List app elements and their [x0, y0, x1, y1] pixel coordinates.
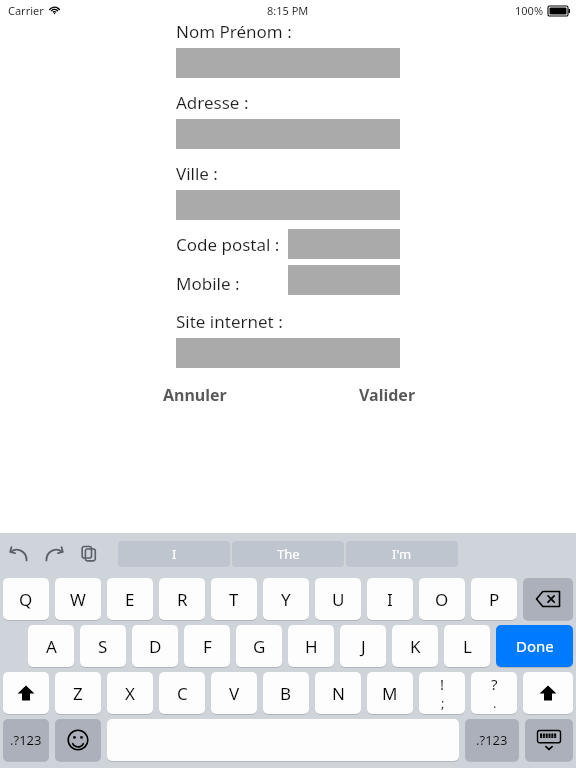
button[interactable]: U — [315, 578, 361, 620]
button[interactable]: Done — [496, 625, 573, 667]
staticText: ? — [491, 674, 498, 694]
staticText: L — [463, 635, 472, 658]
staticText: Carrier — [8, 3, 44, 18]
staticText: Y — [281, 588, 291, 611]
button[interactable]: Backspace — [523, 578, 573, 620]
staticText: G — [253, 635, 266, 658]
button[interactable]: V — [211, 672, 257, 714]
staticText: Ville : — [176, 162, 218, 185]
button[interactable]: Shift — [3, 672, 49, 714]
staticText: Mobile : — [176, 272, 240, 295]
staticText: B — [280, 682, 292, 705]
staticText: Z — [73, 682, 83, 705]
staticText: K — [410, 635, 421, 658]
staticText: F — [203, 635, 212, 658]
button[interactable]: M — [367, 672, 413, 714]
button[interactable]: Valider — [342, 382, 432, 408]
button[interactable]: .?123 — [3, 719, 49, 761]
button[interactable]: The — [232, 541, 344, 567]
button[interactable]: I — [367, 578, 413, 620]
staticText: ; — [441, 694, 445, 712]
staticText: Done — [516, 636, 554, 656]
staticText: V — [229, 682, 240, 705]
staticText: O — [435, 588, 449, 611]
button[interactable]: Z — [55, 672, 101, 714]
button[interactable]: O — [419, 578, 465, 620]
staticText: 100% — [515, 3, 544, 18]
staticText: Site internet : — [176, 310, 283, 333]
staticText: The — [277, 545, 300, 563]
staticText: Code postal : — [176, 233, 280, 256]
button[interactable]: T — [211, 578, 257, 620]
button[interactable]: W — [55, 578, 101, 620]
button[interactable]: D — [132, 625, 178, 667]
button[interactable]: I'm — [346, 541, 458, 567]
staticText: ! — [440, 674, 445, 694]
button[interactable]: A — [28, 625, 74, 667]
button[interactable]: .?123 — [465, 719, 519, 761]
staticText: Annuler — [163, 384, 227, 406]
staticText: Adresse : — [176, 91, 249, 114]
button[interactable]: ! — [419, 672, 465, 714]
staticText: H — [305, 635, 318, 658]
button[interactable]: Hide keyboard — [525, 719, 573, 761]
button[interactable]: K — [392, 625, 438, 667]
button[interactable]: ? — [471, 672, 517, 714]
staticText: .?123 — [10, 731, 42, 749]
staticText: P — [489, 588, 500, 611]
staticText: I — [172, 545, 177, 563]
button[interactable]: I — [118, 541, 230, 567]
button[interactable]: Paste — [74, 539, 104, 569]
staticText: I'm — [392, 545, 412, 563]
button[interactable]: Undo — [4, 539, 34, 569]
button[interactable]: X — [107, 672, 153, 714]
staticText: .?123 — [476, 731, 508, 749]
staticText: M — [382, 682, 398, 705]
button[interactable]: N — [315, 672, 361, 714]
staticText: Nom Prénom : — [176, 20, 292, 43]
button[interactable]: C — [159, 672, 205, 714]
button[interactable]: Shift — [523, 672, 573, 714]
staticText: R — [177, 588, 188, 611]
staticText: X — [125, 682, 135, 705]
staticText: N — [332, 682, 345, 705]
staticText: . — [493, 694, 497, 712]
button[interactable]: F — [184, 625, 230, 667]
staticText: Q — [19, 588, 33, 611]
button[interactable]: S — [80, 625, 126, 667]
button[interactable]: E — [107, 578, 153, 620]
button[interactable]: Redo — [39, 539, 69, 569]
staticText: T — [229, 588, 239, 611]
button[interactable]: B — [263, 672, 309, 714]
staticText: J — [361, 635, 366, 658]
staticText: 8:15 PM — [267, 3, 309, 18]
staticText: I — [387, 588, 393, 611]
staticText: W — [70, 588, 86, 611]
staticText: D — [149, 635, 162, 658]
button[interactable]: L — [444, 625, 490, 667]
staticText: U — [332, 588, 345, 611]
button[interactable]: J — [340, 625, 386, 667]
button[interactable]: P — [471, 578, 517, 620]
button[interactable]: Emoji — [55, 719, 101, 761]
button[interactable]: R — [159, 578, 205, 620]
staticText: E — [125, 588, 135, 611]
button[interactable]: H — [288, 625, 334, 667]
button[interactable]: Y — [263, 578, 309, 620]
staticText: C — [177, 682, 188, 705]
staticText: S — [98, 635, 108, 658]
button[interactable]: G — [236, 625, 282, 667]
button[interactable]: Q — [3, 578, 49, 620]
staticText: A — [46, 635, 57, 658]
staticText: Valider — [359, 384, 416, 406]
button[interactable]: Annuler — [150, 382, 240, 408]
